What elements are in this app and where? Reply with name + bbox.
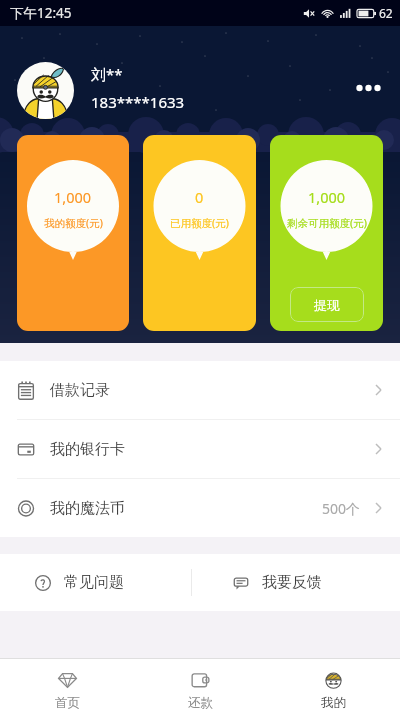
staticText: 刘** [91, 64, 123, 84]
staticText: 已用额度(元) [170, 216, 229, 230]
staticText: 我要反馈 [262, 573, 322, 592]
button[interactable]: 我要反馈 [192, 554, 400, 611]
staticText: 我的 [321, 695, 346, 711]
staticText: 还款 [188, 695, 213, 711]
staticText: 1,000 [54, 187, 92, 207]
button[interactable]: 借款记录 [0, 361, 400, 419]
staticText: 1,000 [308, 187, 346, 207]
staticText: 借款记录 [50, 381, 110, 400]
staticText: 剩余可用额度(元) [287, 216, 367, 230]
staticText: 62 [379, 5, 393, 21]
button[interactable]: 首页 [0, 659, 134, 711]
staticText: 提现 [314, 297, 340, 313]
button[interactable]: 常见问题 [0, 554, 191, 611]
button[interactable]: 提现 [290, 287, 364, 322]
button[interactable]: 1,000 [17, 135, 129, 331]
button[interactable]: 1,000 [270, 135, 383, 331]
button[interactable]: 0 [143, 135, 256, 331]
button[interactable]: 我的魔法币 [0, 479, 400, 537]
button[interactable]: 我的银行卡 [0, 420, 400, 478]
staticText: 我的银行卡 [50, 440, 125, 459]
staticText: 0 [195, 187, 204, 207]
staticText: 我的魔法币 [50, 499, 125, 518]
staticText: 下午12:45 [10, 4, 72, 22]
staticText: 183****1633 [91, 92, 185, 112]
button[interactable]: More options [352, 75, 386, 101]
staticText: 500个 [322, 499, 361, 518]
staticText: 我的额度(元) [44, 216, 103, 230]
button[interactable]: 还款 [134, 659, 267, 711]
staticText: 首页 [55, 695, 80, 711]
button[interactable]: 我的 [267, 659, 400, 711]
staticText: 常见问题 [64, 573, 124, 592]
